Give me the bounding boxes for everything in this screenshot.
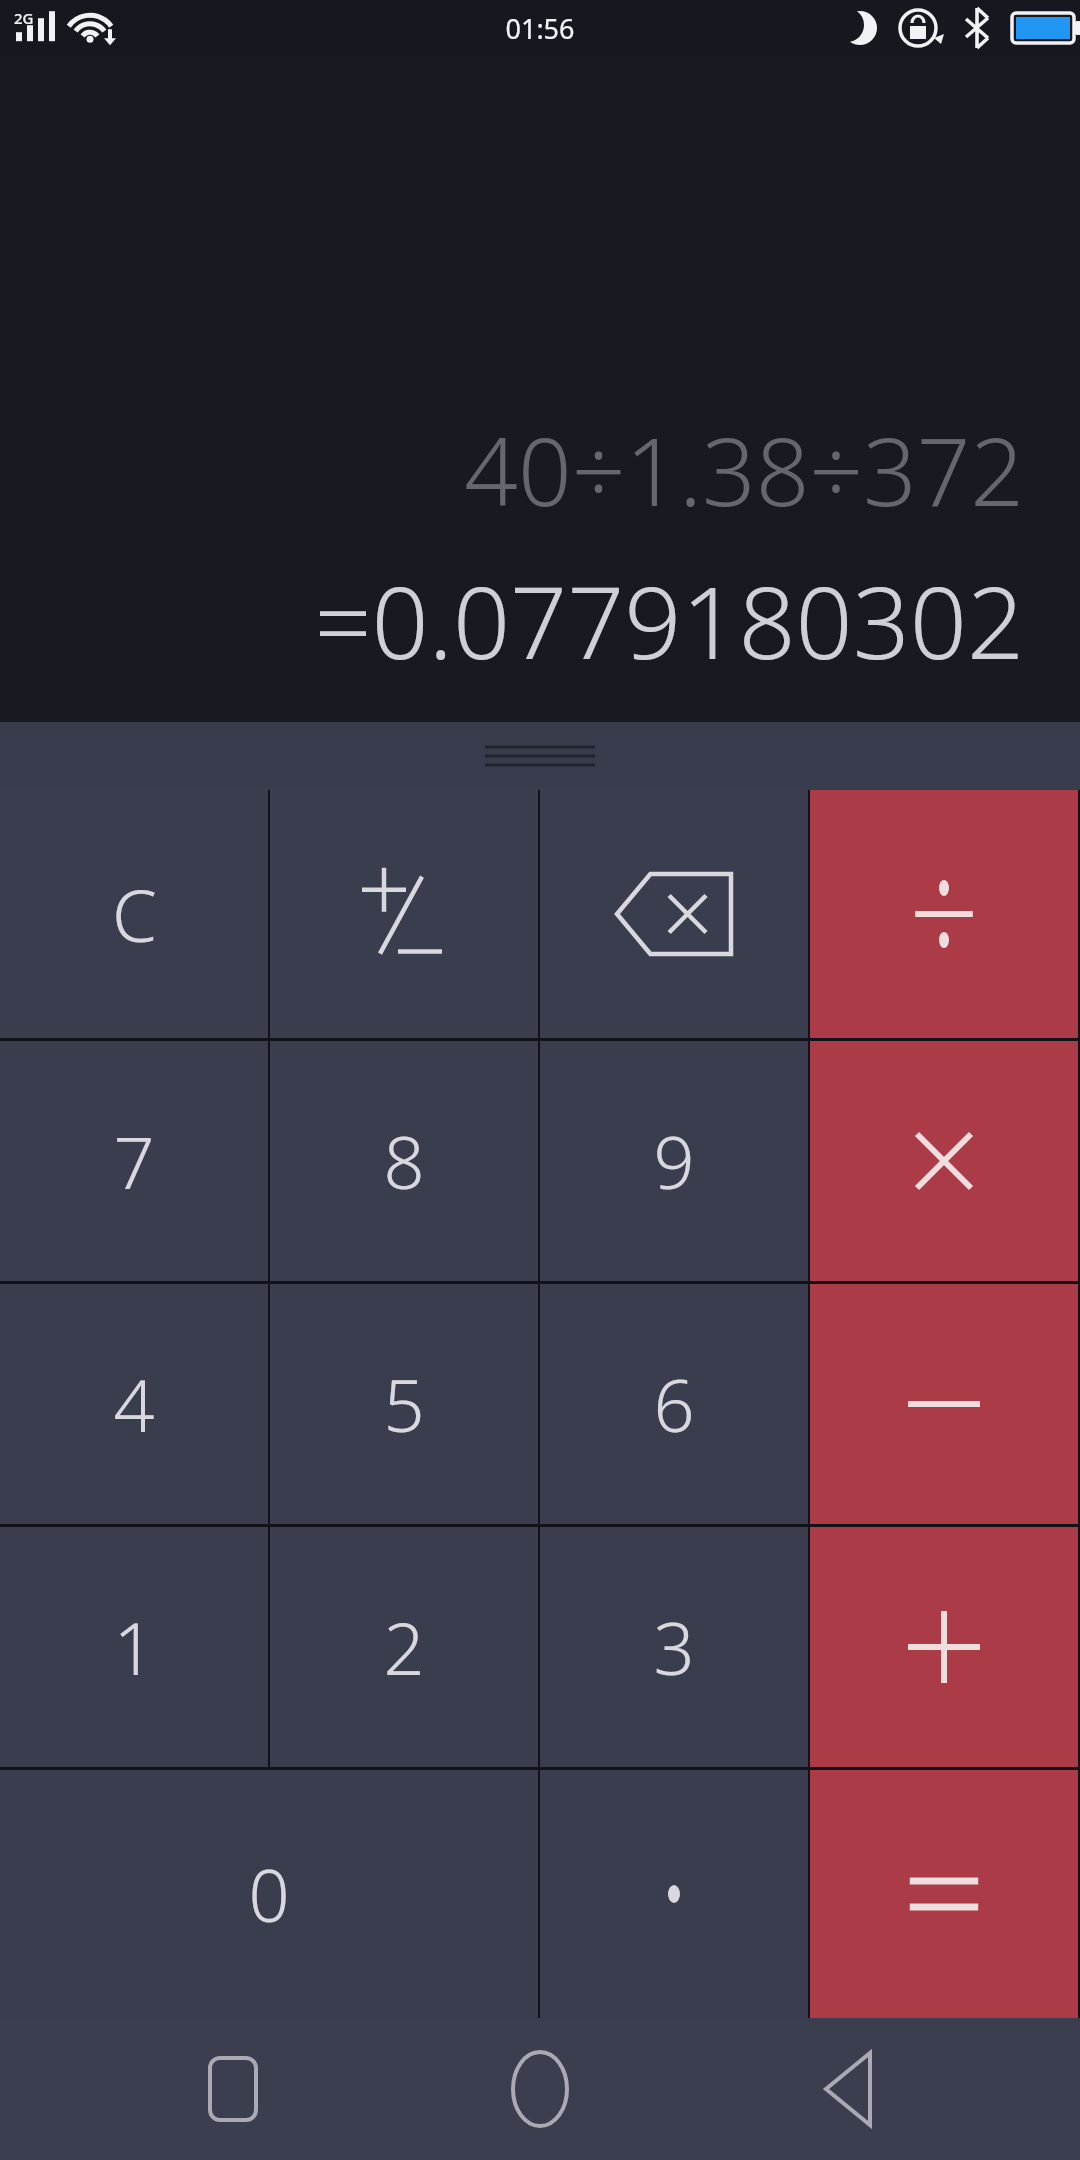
button[interactable]: 7 (0, 1041, 268, 1281)
staticText: 7 (113, 1112, 155, 1210)
staticText: 01:56 (505, 10, 575, 47)
button[interactable]: 0 (0, 1770, 538, 2018)
staticText: 1 (113, 1598, 155, 1696)
button[interactable]: Multiply (810, 1041, 1078, 1281)
button[interactable]: Backspace (540, 790, 808, 1038)
staticText: 5 (383, 1355, 425, 1453)
button[interactable]: 6 (540, 1284, 808, 1524)
button[interactable]: 9 (540, 1041, 808, 1281)
staticText: 3 (653, 1598, 695, 1696)
staticText: 8 (383, 1112, 425, 1210)
staticText: 0 (248, 1845, 290, 1943)
button[interactable]: 4 (0, 1284, 268, 1524)
button[interactable]: Recent apps (158, 2029, 308, 2149)
button[interactable]: Plus minus (270, 790, 538, 1038)
button[interactable]: 8 (270, 1041, 538, 1281)
button[interactable]: 5 (270, 1284, 538, 1524)
button[interactable]: 3 (540, 1527, 808, 1767)
button[interactable]: Decimal point (540, 1770, 808, 2018)
staticText: 9 (653, 1112, 695, 1210)
staticText: 40÷1.38÷372 (464, 406, 1024, 534)
staticText: 4 (113, 1355, 155, 1453)
staticText: 2G (14, 8, 34, 28)
button[interactable]: Back (773, 2029, 923, 2149)
button[interactable]: 2 (270, 1527, 538, 1767)
staticText: =0.0779180302 (314, 552, 1024, 688)
button[interactable]: Plus (810, 1527, 1078, 1767)
button[interactable]: Equals (810, 1770, 1078, 2018)
button[interactable]: Minus (810, 1284, 1078, 1524)
staticText: 6 (653, 1355, 695, 1453)
button[interactable] (0, 722, 1080, 790)
staticText: 2 (383, 1598, 425, 1696)
button[interactable]: 1 (0, 1527, 268, 1767)
button[interactable]: Home (465, 2029, 615, 2149)
button[interactable]: Divide (810, 790, 1078, 1038)
button[interactable]: C (0, 790, 268, 1038)
staticText: C (112, 865, 157, 963)
